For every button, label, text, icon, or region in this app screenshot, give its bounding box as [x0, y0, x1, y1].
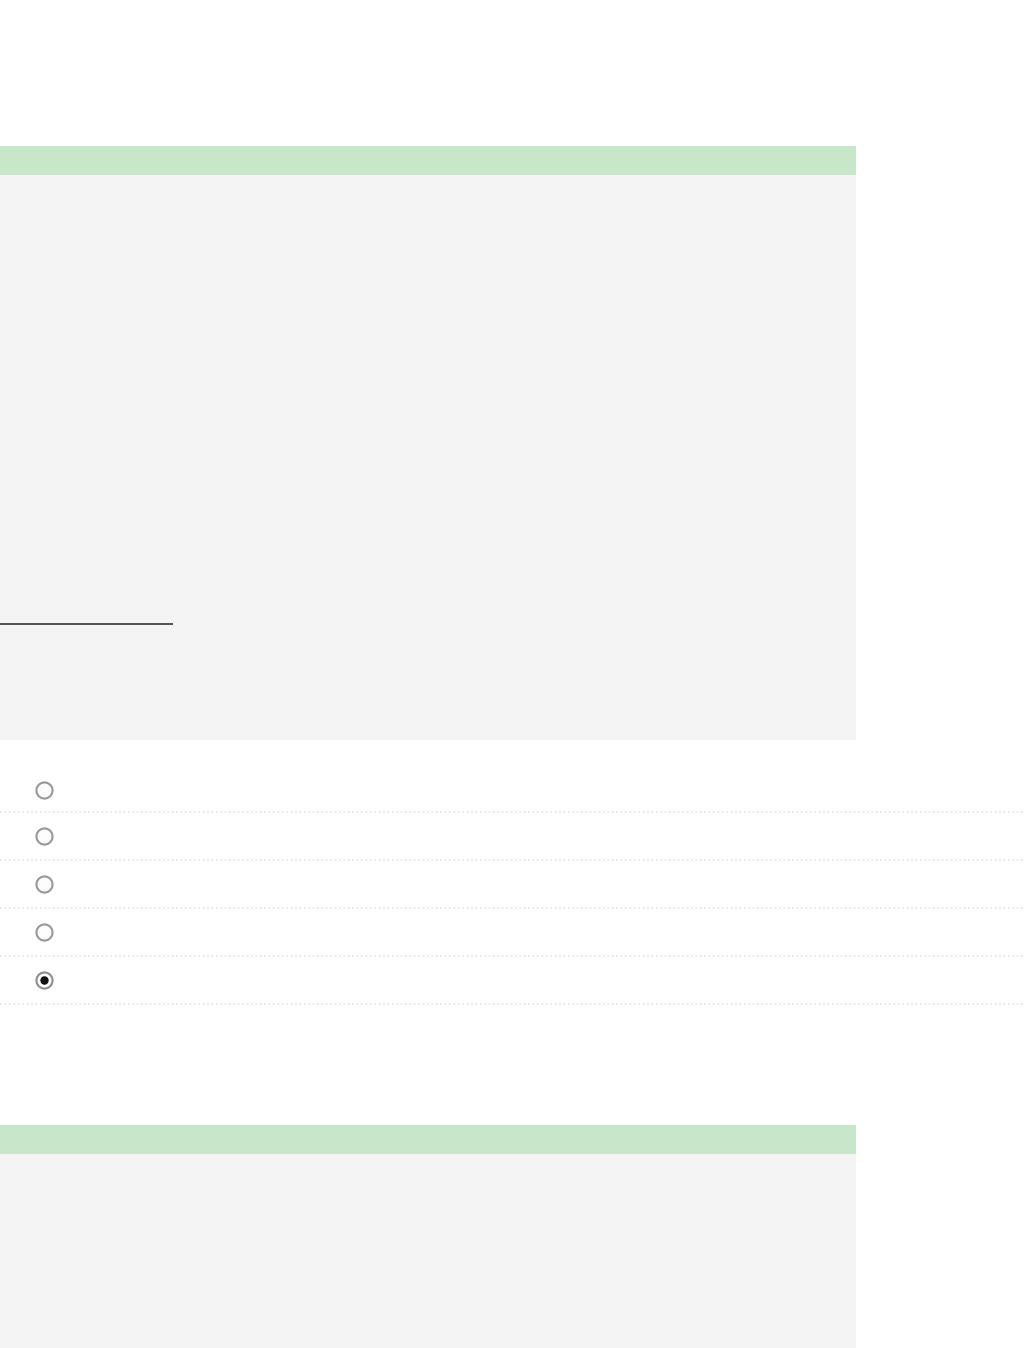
other: Option [35, 923, 54, 942]
other: Option [35, 827, 54, 846]
other: Option [35, 781, 54, 800]
button[interactable]: Option [0, 813, 1024, 859]
other: Selected option [35, 971, 54, 990]
button[interactable]: Option [0, 909, 1024, 955]
other: Option [35, 875, 54, 894]
button[interactable]: Selected option [0, 957, 1024, 1003]
button[interactable]: Option [0, 769, 1024, 811]
button[interactable]: Option [0, 861, 1024, 907]
